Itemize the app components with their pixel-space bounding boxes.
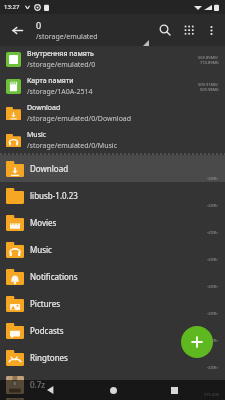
button[interactable]: Download [0, 155, 225, 182]
staticText: 509.91MБ/ [198, 82, 219, 87]
staticText: <DIR> [207, 176, 219, 181]
button[interactable]: Music [0, 236, 225, 263]
staticText: Movies [30, 217, 219, 228]
button[interactable]: Notifications [0, 263, 225, 290]
button[interactable]: 0.7z [0, 371, 225, 398]
button[interactable]: Ringtones [0, 344, 225, 371]
staticText: Download [30, 163, 219, 174]
button[interactable]: Home [103, 380, 123, 400]
button[interactable]: Search [153, 18, 177, 42]
staticText: Podcasts [30, 325, 219, 336]
button[interactable]: Add [181, 326, 213, 358]
staticText: Notifications [30, 271, 219, 282]
button[interactable]: Pictures [0, 290, 225, 317]
staticText: 0.7z [30, 379, 219, 390]
staticText: /storage/emulated/0/Music [27, 141, 117, 151]
staticText: Download [27, 103, 61, 113]
staticText: <DIR> [207, 284, 219, 289]
staticText: Pictures [30, 298, 219, 309]
button[interactable]: Podcasts [0, 317, 225, 344]
staticText: 774.89MБ [200, 60, 219, 65]
staticText: /storage/emulated/0 [27, 60, 96, 70]
button[interactable]: More options [201, 20, 221, 40]
staticText: <DIR> [207, 230, 219, 235]
button[interactable] [0, 398, 225, 400]
staticText: Карта памяти [27, 76, 74, 86]
button[interactable]: Music [0, 127, 225, 154]
staticText: 0 [36, 19, 42, 31]
button[interactable]: Recents [164, 380, 184, 400]
staticText: <DIR> [207, 257, 219, 262]
staticText: Music [30, 244, 219, 255]
staticText: libusb-1.0.23 [30, 190, 219, 201]
button[interactable]: Back [41, 380, 61, 400]
staticText: Music [27, 130, 47, 140]
staticText: <DIR> [207, 311, 219, 316]
staticText: Внутренняя память [27, 49, 94, 59]
staticText: 509.98MБ [200, 87, 219, 92]
button[interactable]: Movies [0, 209, 225, 236]
button[interactable]: libusb-1.0.23 [0, 182, 225, 209]
staticText: 275.00Б [204, 392, 219, 397]
staticText: <DIR> [207, 365, 219, 370]
staticText: Ringtones [30, 352, 219, 363]
button[interactable]: Download [0, 100, 225, 127]
staticText: /storage/emulated/0/Download [27, 114, 132, 124]
staticText: /storage/emulated [36, 32, 98, 42]
staticText: 13:27 [4, 3, 20, 11]
button[interactable]: Back [4, 17, 30, 43]
button[interactable]: Внутренняя память [0, 46, 225, 73]
staticText: /storage/1A0A-2514 [27, 87, 93, 97]
button[interactable]: Grid view [177, 18, 201, 42]
staticText: 569.85MБ/ [198, 55, 219, 60]
button[interactable]: Карта памяти [0, 73, 225, 100]
staticText: <DIR> [207, 203, 219, 208]
staticText: <DIR> [207, 338, 219, 343]
